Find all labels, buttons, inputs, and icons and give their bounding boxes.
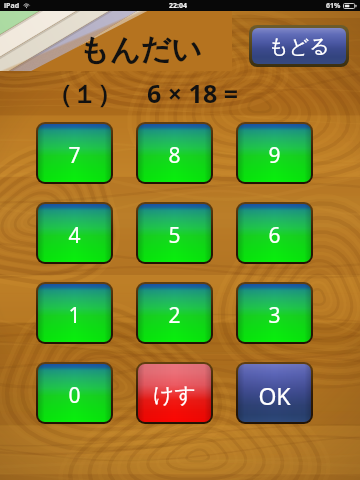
button[interactable]: 6 (236, 202, 313, 264)
staticText: 1 (68, 301, 81, 330)
staticText: もんだい (79, 31, 202, 69)
staticText: 8 (168, 141, 181, 170)
button[interactable]: 5 (136, 202, 213, 264)
button[interactable]: 2 (136, 282, 213, 344)
button[interactable]: 0 (36, 362, 113, 424)
other: Wi-Fi (23, 2, 30, 9)
button[interactable]: 8 (136, 122, 213, 184)
staticText: 4 (68, 221, 81, 250)
staticText: 0 (68, 381, 81, 410)
button[interactable]: 1 (36, 282, 113, 344)
button[interactable]: 3 (236, 282, 313, 344)
button[interactable]: もどる (249, 25, 349, 67)
other: Battery (343, 3, 356, 9)
staticText: 3 (268, 301, 281, 330)
staticText: 61% (326, 1, 341, 11)
staticText: 7 (68, 141, 81, 170)
staticText: けす (153, 382, 196, 408)
staticText: 5 (168, 221, 181, 250)
staticText: 2 (168, 301, 181, 330)
staticText: 9 (268, 141, 281, 170)
staticText: OK (258, 380, 291, 411)
staticText: 6 (268, 221, 281, 250)
staticText: （１） 6 × 18 = (47, 76, 239, 110)
staticText: もどる (268, 34, 330, 59)
button[interactable]: 4 (36, 202, 113, 264)
button[interactable]: 9 (236, 122, 313, 184)
button[interactable]: けす (136, 362, 213, 424)
staticText: iPad (4, 1, 20, 11)
staticText: 22:04 (169, 1, 187, 11)
button[interactable]: 7 (36, 122, 113, 184)
button[interactable]: OK (236, 362, 313, 424)
